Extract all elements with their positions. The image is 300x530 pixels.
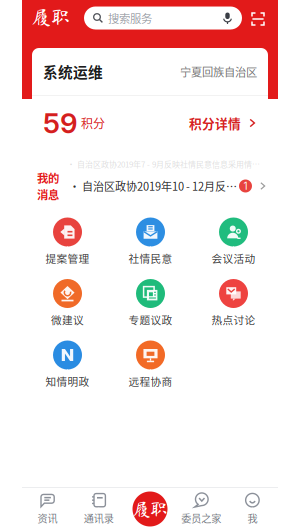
button[interactable]: 会议活动 <box>192 217 275 263</box>
staticText: 远程协商 <box>128 373 172 389</box>
staticText: • 自治区政协2019年10 - 12月反映社情... <box>69 178 239 194</box>
button[interactable]: 我的 <box>22 165 278 207</box>
staticText: 积分 <box>81 114 105 132</box>
staticText: 提案管理 <box>45 250 89 266</box>
button[interactable]: 搜索服务 <box>84 6 242 29</box>
staticText: 1 <box>243 180 247 192</box>
staticText: 通讯录 <box>84 511 114 525</box>
button[interactable]: 社情民意 <box>109 217 192 263</box>
staticText: 我的 <box>37 170 59 186</box>
staticText: 59 <box>43 106 78 140</box>
button[interactable]: 扫一扫 <box>245 6 271 32</box>
button[interactable]: 微建议 <box>26 279 109 325</box>
button[interactable]: 资讯 <box>22 488 73 530</box>
staticText: 专题议政 <box>128 312 172 327</box>
staticText: 我 <box>247 511 257 525</box>
staticText: 知情明政 <box>45 373 89 389</box>
staticText: 履职 <box>32 8 70 26</box>
staticText: 社情民意 <box>128 250 172 266</box>
button[interactable]: 我 <box>227 488 278 530</box>
button[interactable]: 热点讨论 <box>192 279 275 325</box>
button[interactable]: 专题议政 <box>109 279 192 325</box>
staticText: 消息 <box>37 186 59 202</box>
staticText: 履职 <box>133 500 167 518</box>
staticText: 热点讨论 <box>211 312 255 327</box>
button[interactable]: 提案管理 <box>26 217 109 263</box>
staticText: 委员之家 <box>181 511 221 525</box>
staticText: 微建议 <box>51 312 84 327</box>
button[interactable]: 59 <box>32 96 268 150</box>
staticText: 积分详情 <box>189 114 241 132</box>
staticText: 会议活动 <box>211 250 255 266</box>
staticText: 搜索服务 <box>108 10 152 26</box>
staticText: 系统运维 <box>43 61 103 82</box>
button[interactable]: 履职 <box>124 488 176 530</box>
staticText: 资讯 <box>38 511 58 525</box>
staticText: · 自治区政协2019年7 - 9月反映社情民意信息采用情况通报 <box>67 158 267 170</box>
button[interactable]: 知情明政 <box>26 340 109 386</box>
staticText: 宁夏回族自治区 <box>180 63 257 80</box>
button[interactable]: 通讯录 <box>73 488 124 530</box>
button[interactable]: 委员之家 <box>176 488 227 530</box>
button[interactable]: 远程协商 <box>109 340 192 386</box>
